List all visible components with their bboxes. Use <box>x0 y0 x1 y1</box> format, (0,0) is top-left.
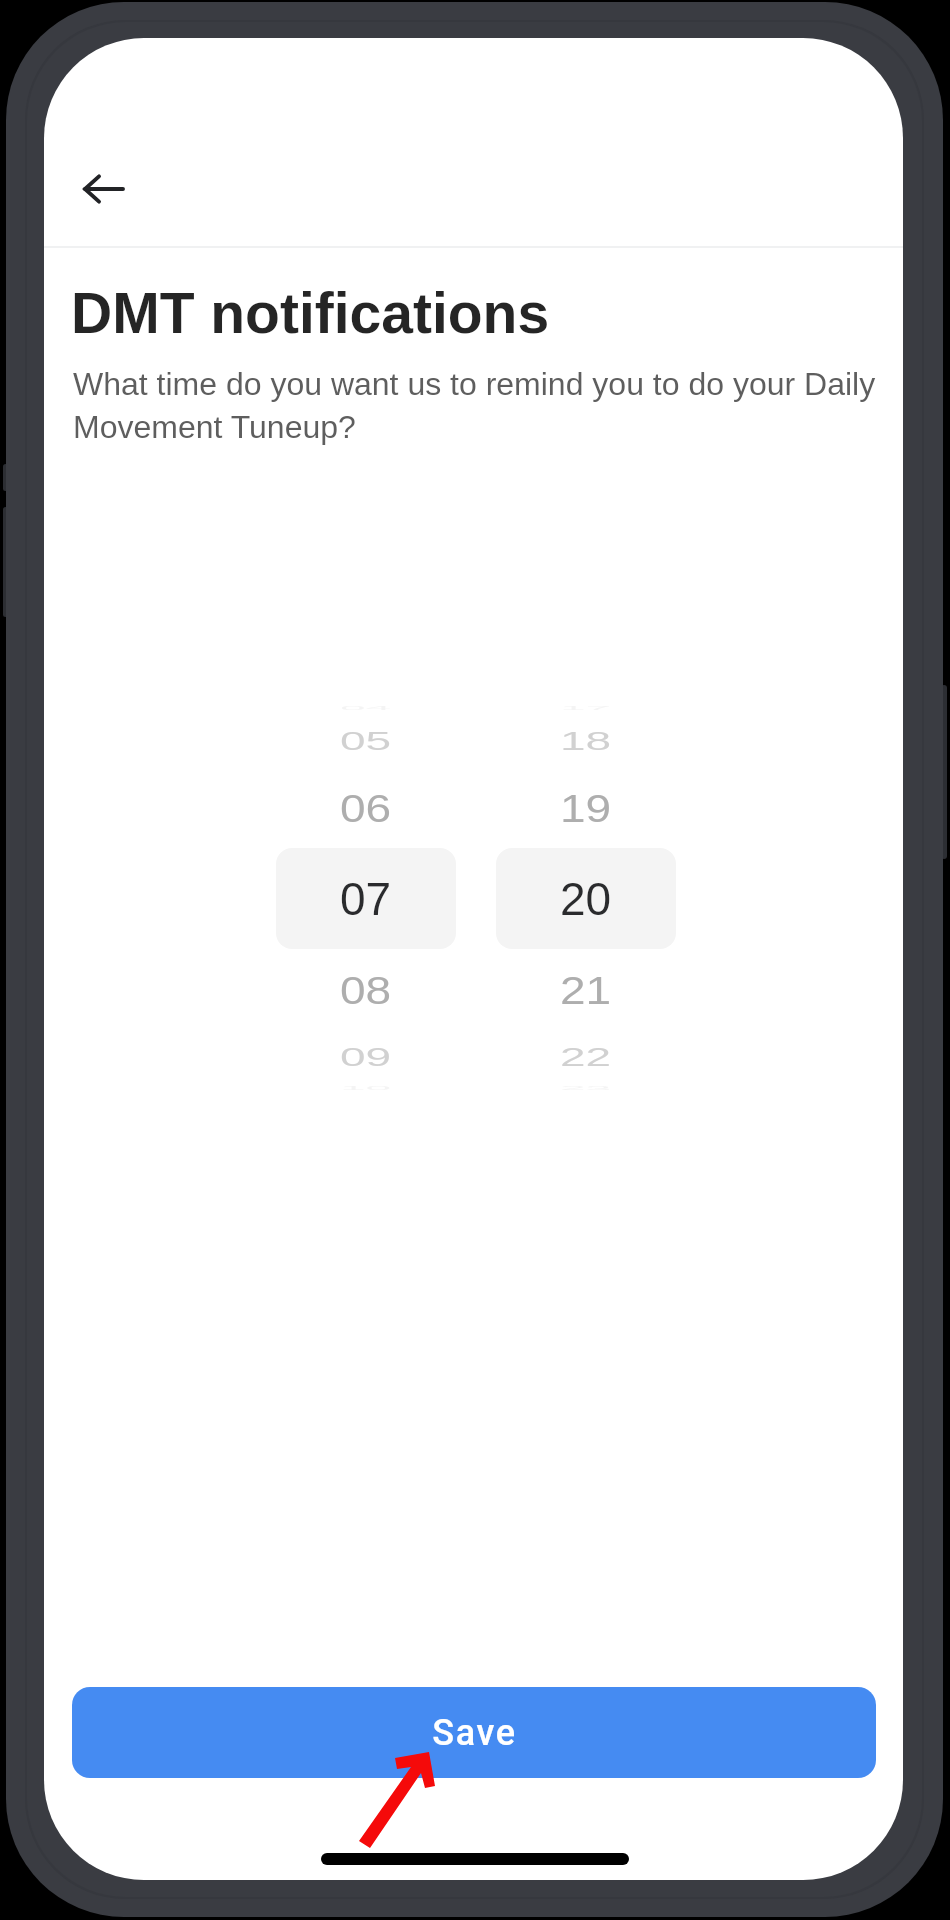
staticText: 18 <box>560 726 612 755</box>
staticText: DMT notifications <box>71 281 550 345</box>
staticText: 19 <box>560 786 612 829</box>
button[interactable]: Save <box>72 1687 876 1778</box>
staticText: 10 <box>340 1085 392 1091</box>
staticText: 09 <box>340 1042 392 1071</box>
staticText: 22 <box>560 1042 612 1071</box>
staticText: 21 <box>560 968 612 1011</box>
staticText: 06 <box>340 786 392 829</box>
staticText: 23 <box>560 1085 612 1091</box>
staticText: Save <box>432 1712 517 1754</box>
button[interactable]: Back <box>54 145 154 233</box>
staticText: 05 <box>340 726 392 755</box>
staticText: 20 <box>560 873 612 924</box>
staticText: 04 <box>340 705 392 711</box>
staticText: 17 <box>560 705 612 711</box>
staticText: 07 <box>340 873 392 924</box>
staticText: What time do you want us to remind you t… <box>73 366 885 445</box>
staticText: 08 <box>340 968 392 1011</box>
button[interactable]: Hour <box>276 848 456 949</box>
button[interactable]: Minute <box>496 848 676 949</box>
